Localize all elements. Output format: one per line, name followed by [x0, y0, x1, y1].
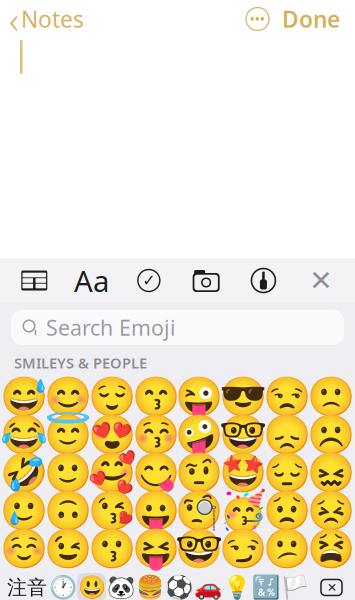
- button[interactable]: Markup: [240, 259, 286, 301]
- button[interactable]: More options: [246, 7, 269, 30]
- button[interactable]: Camera: [183, 259, 229, 301]
- button[interactable]: Category 😃: [77, 573, 106, 600]
- button[interactable]: Emoji 😌: [96, 378, 128, 414]
- staticText: 🙃: [44, 488, 92, 533]
- button[interactable]: Emoji 😟: [271, 492, 303, 528]
- button[interactable]: Delete: [309, 571, 349, 600]
- staticText: SMILEYS & PEOPLE: [14, 353, 147, 372]
- staticText: 🚗: [193, 574, 221, 600]
- button[interactable]: Done: [269, 3, 353, 35]
- button[interactable]: ‹: [0, 3, 92, 35]
- staticText: 😎: [219, 374, 267, 419]
- button[interactable]: Emoji 😏: [227, 530, 259, 566]
- button[interactable]: Emoji 😍: [96, 416, 128, 452]
- button[interactable]: Emoji 😅: [8, 378, 40, 414]
- button[interactable]: Emoji 🤓: [227, 416, 259, 452]
- staticText: 🧐: [175, 488, 223, 533]
- staticText: ☹️: [307, 412, 355, 457]
- button[interactable]: Checklist: [126, 259, 172, 301]
- button[interactable]: Emoji ☹️: [315, 416, 347, 452]
- button[interactable]: Category 🔣: [251, 573, 280, 600]
- staticText: ⚽️: [164, 574, 192, 600]
- button[interactable]: Emoji 😕: [271, 530, 303, 566]
- button[interactable]: Emoji 😘: [96, 492, 128, 528]
- staticText: 注音: [7, 575, 47, 600]
- staticText: 🐼: [106, 574, 134, 600]
- button[interactable]: Emoji 🙂: [52, 454, 84, 490]
- button[interactable]: Category 🏳️: [280, 573, 309, 600]
- staticText: 😟: [263, 488, 311, 533]
- staticText: 🥲: [0, 488, 48, 533]
- button[interactable]: Category 💡: [222, 573, 251, 600]
- staticText: 🕐: [48, 574, 76, 600]
- button[interactable]: Emoji 😛: [140, 492, 172, 528]
- button[interactable]: Emoji ☺️: [8, 530, 40, 566]
- button[interactable]: Emoji 🤩: [227, 454, 259, 490]
- staticText: 😝: [132, 526, 180, 571]
- button[interactable]: Emoji 😔: [271, 454, 303, 490]
- button[interactable]: Emoji 😗: [96, 530, 128, 566]
- button[interactable]: Emoji 😝: [140, 530, 172, 566]
- button[interactable]: 注音: [6, 571, 48, 600]
- button[interactable]: Emoji 😒: [271, 378, 303, 414]
- button[interactable]: Emoji 🤪: [183, 416, 215, 452]
- button[interactable]: Emoji 🥲: [8, 492, 40, 528]
- button[interactable]: Emoji 😙: [140, 378, 172, 414]
- staticText: Notes: [21, 4, 84, 34]
- button[interactable]: Emoji 😣: [315, 492, 347, 528]
- button[interactable]: Text format: [69, 259, 115, 301]
- staticText: ☺️: [0, 526, 48, 571]
- button[interactable]: Emoji 😂: [8, 416, 40, 452]
- staticText: 😫: [307, 526, 355, 571]
- staticText: 😊: [44, 374, 92, 419]
- staticText: 🥳: [219, 488, 267, 533]
- button[interactable]: Emoji 😎: [227, 378, 259, 414]
- staticText: 😒: [263, 374, 311, 419]
- staticText: ✕: [309, 265, 332, 296]
- button[interactable]: Table: [11, 259, 57, 301]
- button[interactable]: Emoji 😫: [315, 530, 347, 566]
- staticText: 🤓: [175, 526, 223, 571]
- button[interactable]: Emoji 😖: [315, 454, 347, 490]
- button[interactable]: Close: [298, 259, 344, 301]
- staticText: 🙂: [44, 450, 92, 495]
- button[interactable]: Emoji 😜: [183, 378, 215, 414]
- button[interactable]: Category 🐼: [106, 573, 135, 600]
- button[interactable]: Emoji 🙁: [315, 378, 347, 414]
- button[interactable]: Category 🕐: [48, 573, 77, 600]
- button[interactable]: Emoji 🥰: [96, 454, 128, 490]
- staticText: 😋: [132, 450, 180, 495]
- staticText: ‹: [9, 0, 19, 44]
- staticText: 😃: [77, 574, 105, 600]
- staticText: 😕: [263, 526, 311, 571]
- staticText: Aa: [74, 261, 109, 300]
- staticText: 😣: [307, 488, 355, 533]
- staticText: 🤩: [219, 450, 267, 495]
- staticText: 🙁: [307, 374, 355, 419]
- button[interactable]: Emoji 😚: [140, 416, 172, 452]
- button[interactable]: Emoji 😋: [140, 454, 172, 490]
- button[interactable]: Emoji 😇: [52, 416, 84, 452]
- staticText: Search Emoji: [46, 313, 176, 342]
- staticText: 🥰: [88, 450, 136, 495]
- button[interactable]: Emoji 🤣: [8, 454, 40, 490]
- button[interactable]: Emoji 😉: [52, 530, 84, 566]
- staticText: 😂: [0, 412, 48, 457]
- button[interactable]: Category 🍔: [135, 573, 164, 600]
- staticText: 🔣: [251, 574, 279, 600]
- staticText: 😇: [44, 412, 92, 457]
- button[interactable]: Emoji 🥳: [227, 492, 259, 528]
- button[interactable]: Emoji 🧐: [183, 492, 215, 528]
- button[interactable]: Emoji 😞: [271, 416, 303, 452]
- button[interactable]: Emoji 🤓: [183, 530, 215, 566]
- button[interactable]: Search Emoji: [11, 310, 344, 345]
- button[interactable]: Emoji 🤨: [183, 454, 215, 490]
- button[interactable]: Emoji 😊: [52, 378, 84, 414]
- button[interactable]: Category 🚗: [193, 573, 222, 600]
- staticText: 🤪: [175, 412, 223, 457]
- staticText: 😘: [88, 488, 136, 533]
- button[interactable]: Category ⚽️: [164, 573, 193, 600]
- staticText: 🤣: [0, 450, 48, 495]
- button[interactable]: Emoji 🙃: [52, 492, 84, 528]
- staticText: 😜: [175, 374, 223, 419]
